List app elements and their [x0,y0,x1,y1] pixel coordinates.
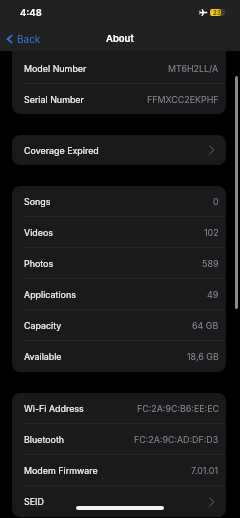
button[interactable]: Applications [12,279,226,310]
button[interactable]: Modem Firmware [12,455,226,486]
staticText: 102 [204,227,219,238]
staticText: 4:48 [20,7,42,18]
staticText: Capacity [24,320,62,331]
staticText: Model Number [24,63,87,74]
button[interactable]: Capacity [12,310,226,341]
button[interactable]: Available [12,341,226,372]
button[interactable]: Wi-Fi Address [12,393,226,424]
staticText: Bluetooth [24,434,65,445]
staticText: Wi-Fi Address [24,403,84,414]
staticText: 18,6 GB [187,351,219,362]
staticText: About [106,33,134,44]
button[interactable]: Songs [12,186,226,217]
button[interactable]: SEID [12,486,226,517]
staticText: FC:2A:9C:AD:DF:D3 [134,434,219,445]
staticText: FFMXCC2EKPHF [147,94,219,105]
button[interactable]: Photos [12,248,226,279]
staticText: FC:2A:9C:B6:EE:EC [137,403,219,414]
staticText: SEID [24,496,44,507]
staticText: Photos [24,258,54,269]
button[interactable]: Videos [12,217,226,248]
staticText: Modem Firmware [24,465,98,476]
staticText: Coverage Expired [24,145,99,156]
staticText: Back [17,33,41,45]
staticText: Songs [24,196,51,207]
staticText: 49 [207,289,219,300]
button[interactable]: Coverage Expired [12,135,226,165]
button[interactable]: Back [6,33,41,45]
staticText: Applications [24,289,76,300]
staticText: 7.01.01 [191,465,219,476]
staticText: 589 [202,258,219,269]
button[interactable]: Bluetooth [12,424,226,455]
staticText: Available [24,351,62,362]
staticText: Serial Number [24,94,84,105]
button[interactable]: Serial Number [12,84,226,114]
staticText: Videos [24,227,53,238]
button[interactable]: Model Number [12,52,226,84]
staticText: 23 [213,9,221,16]
staticText: MT6H2LL/A [168,63,219,74]
staticText: 0 [213,196,219,207]
staticText: 64 GB [192,320,219,331]
